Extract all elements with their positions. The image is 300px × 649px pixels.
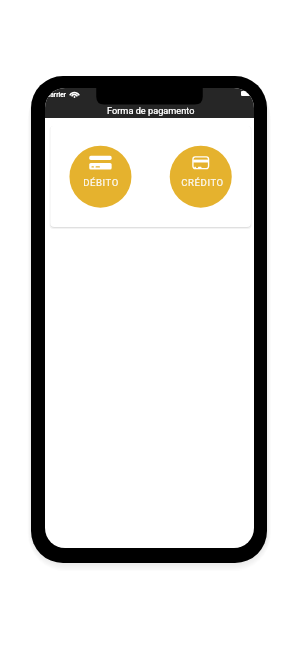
staticText: DÉBITO: [83, 177, 119, 188]
button[interactable]: DÉBITO: [69, 146, 131, 208]
other: Battery: [241, 91, 250, 96]
staticText: Carrier: [46, 91, 67, 99]
other: Wi-Fi: [70, 91, 79, 98]
staticText: Forma de pagamento: [107, 105, 195, 116]
button[interactable]: CRÉDITO: [170, 146, 232, 208]
staticText: CRÉDITO: [181, 177, 224, 188]
